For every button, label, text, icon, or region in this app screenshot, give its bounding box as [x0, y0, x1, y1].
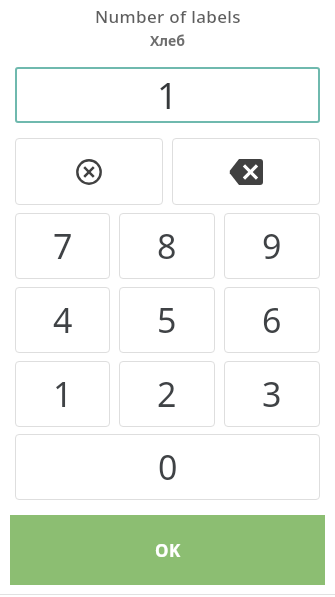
- button[interactable]: 1: [15, 361, 110, 427]
- staticText: 4: [53, 297, 73, 343]
- button[interactable]: 8: [119, 213, 215, 279]
- staticText: 1: [157, 71, 178, 120]
- button[interactable]: [15, 138, 163, 205]
- button[interactable]: 4: [15, 287, 110, 353]
- staticText: 5: [157, 297, 177, 343]
- button[interactable]: 0: [15, 434, 320, 500]
- staticText: 8: [157, 223, 177, 269]
- button[interactable]: 6: [224, 287, 320, 353]
- staticText: Хлеб: [150, 31, 185, 50]
- staticText: 2: [157, 371, 177, 417]
- staticText: 3: [262, 371, 282, 417]
- button[interactable]: OK: [10, 515, 325, 585]
- button[interactable]: 9: [224, 213, 320, 279]
- button[interactable]: 2: [119, 361, 215, 427]
- staticText: 9: [262, 223, 282, 269]
- staticText: 1: [53, 371, 73, 417]
- staticText: Number of labels: [95, 5, 241, 28]
- button[interactable]: 3: [224, 361, 320, 427]
- staticText: 0: [158, 444, 178, 490]
- button[interactable]: 5: [119, 287, 215, 353]
- button[interactable]: 7: [15, 213, 110, 279]
- staticText: 7: [53, 223, 73, 269]
- staticText: 6: [262, 297, 282, 343]
- button[interactable]: [172, 138, 320, 205]
- staticText: OK: [155, 539, 181, 562]
